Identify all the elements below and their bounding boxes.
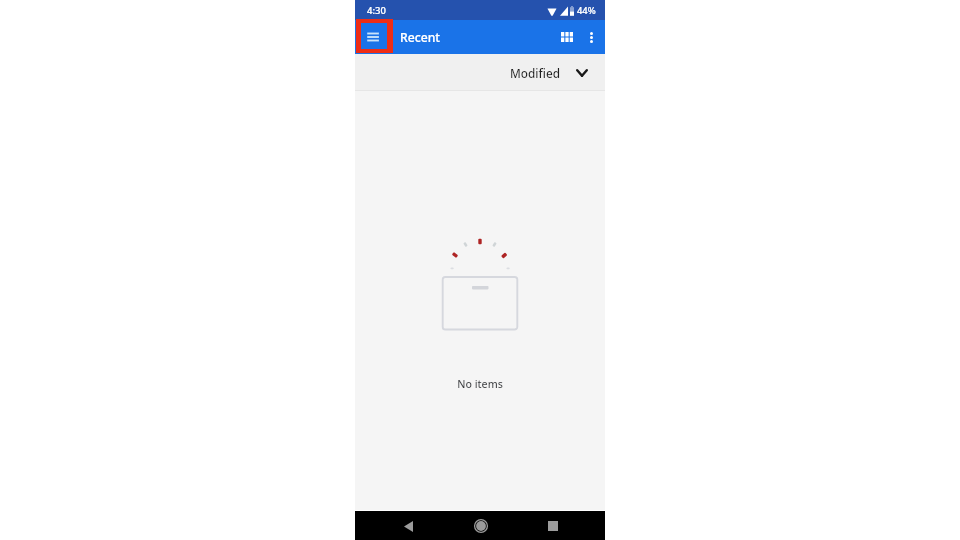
button[interactable]: Back (396, 514, 420, 538)
button[interactable]: Recent apps (541, 514, 565, 538)
button[interactable]: Modified (507, 62, 591, 84)
staticText: Recent (400, 29, 440, 46)
staticText: 4:30 (367, 4, 386, 17)
staticText: No items (457, 377, 503, 391)
button[interactable]: Grid view (555, 25, 579, 49)
staticText: Modified (510, 65, 561, 81)
button[interactable]: Home (469, 514, 493, 538)
staticText: 44% (577, 4, 596, 17)
button[interactable]: More options (579, 25, 603, 49)
button[interactable]: Open navigation drawer (362, 23, 390, 51)
